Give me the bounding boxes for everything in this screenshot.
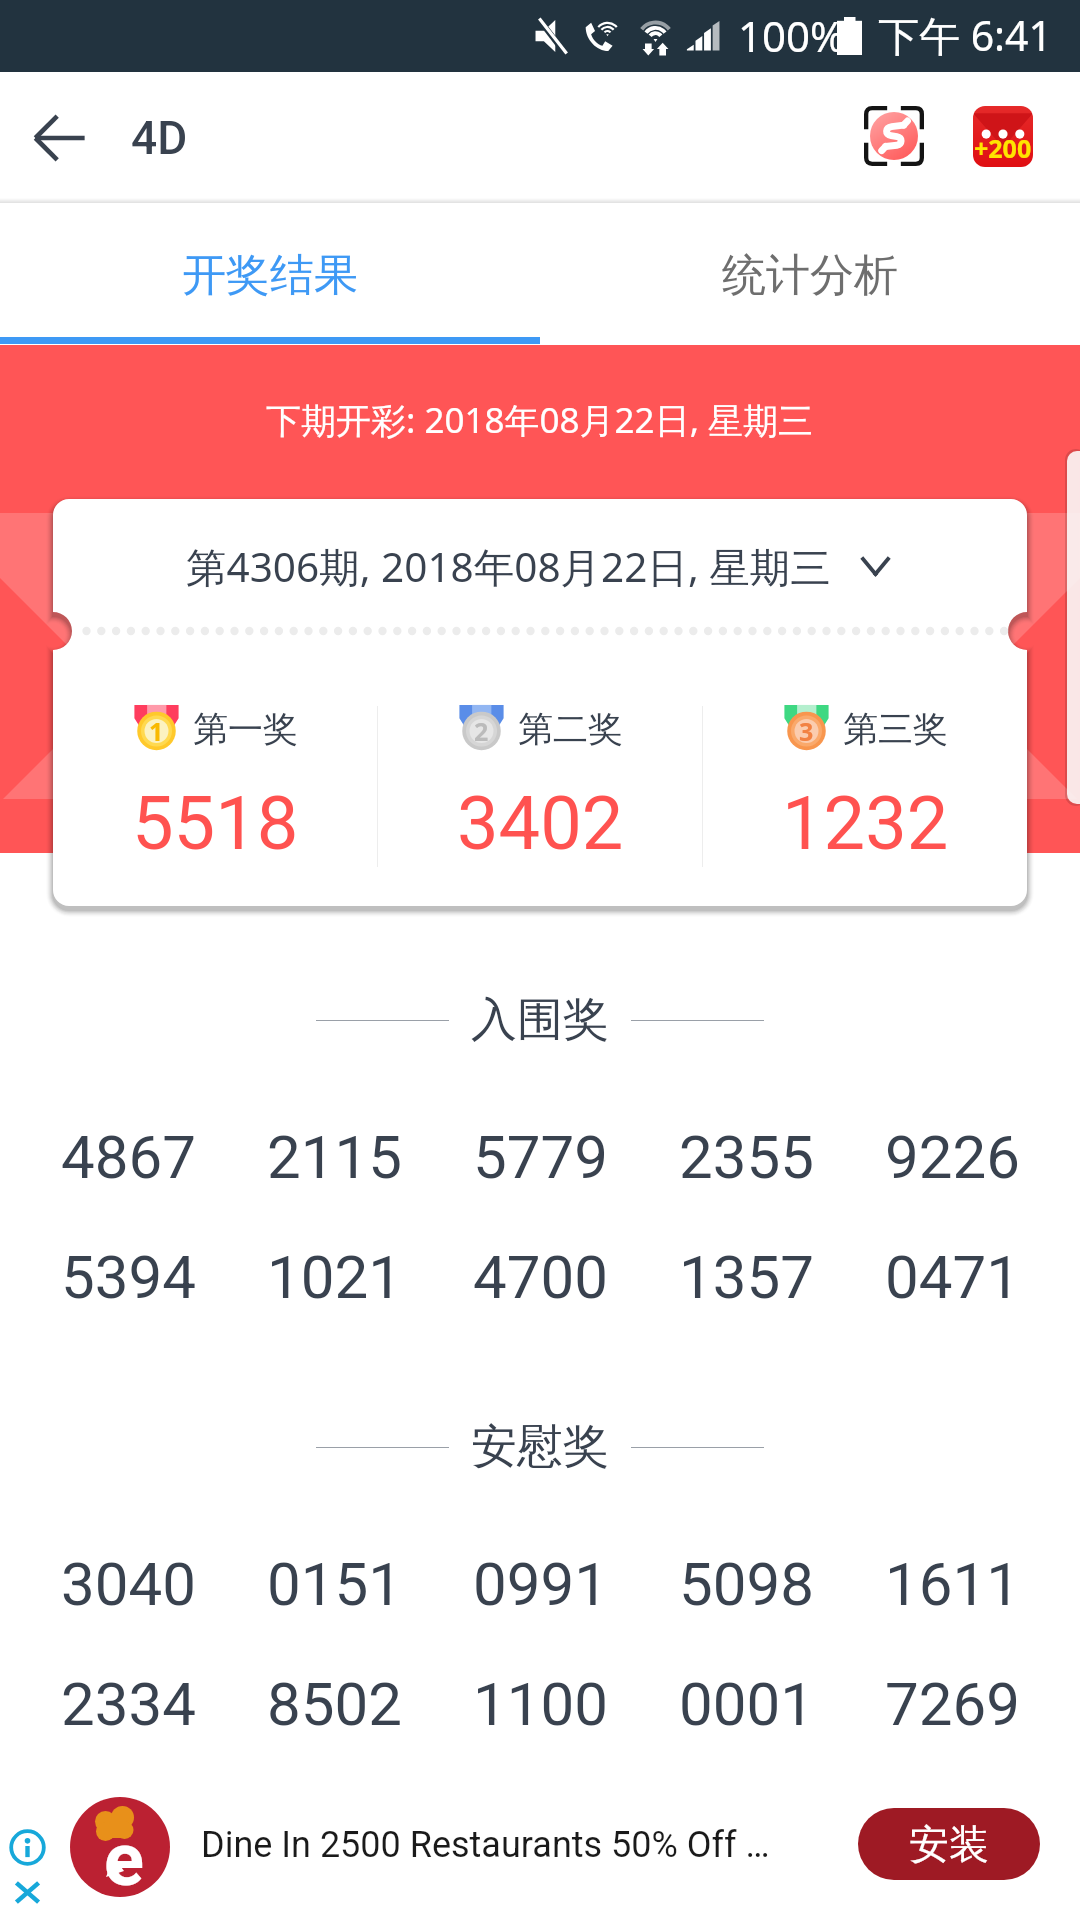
staticText: 3: [799, 714, 814, 748]
staticText: 统计分析: [722, 248, 898, 303]
staticText: 7269: [885, 1669, 1020, 1739]
staticText: 4867: [61, 1122, 196, 1192]
staticText: 1: [149, 714, 164, 748]
staticText: 安慰奖: [471, 1418, 609, 1476]
button[interactable]: Close ad: [9, 1874, 46, 1911]
staticText: 安装: [909, 1819, 989, 1869]
staticText: 1100: [473, 1669, 608, 1739]
staticText: 1021: [267, 1242, 402, 1312]
staticText: 0991: [473, 1549, 608, 1619]
button[interactable]: 安装: [858, 1808, 1040, 1880]
staticText: 5779: [473, 1122, 608, 1192]
button[interactable]: Back: [14, 92, 106, 184]
button[interactable]: Messages, 200 points: [957, 90, 1049, 182]
staticText: 下期开彩: 2018年08月22日, 星期三: [266, 396, 814, 444]
button[interactable]: 统计分析: [540, 203, 1080, 344]
staticText: 2: [474, 714, 489, 748]
staticText: 入围奖: [471, 991, 609, 1049]
staticText: 100%: [738, 7, 845, 64]
staticText: 0001: [679, 1669, 814, 1739]
staticText: 0471: [885, 1242, 1020, 1312]
button[interactable]: 开奖结果: [0, 203, 540, 344]
staticText: 5394: [61, 1242, 196, 1312]
staticText: 第4306期, 2018年08月22日, 星期三: [186, 539, 831, 594]
staticText: 3402: [457, 780, 624, 867]
staticText: Dine In 2500 Restaurants 50% Off …: [201, 1824, 770, 1866]
staticText: 第二奖: [518, 707, 623, 751]
staticText: 4700: [473, 1242, 608, 1312]
staticText: 3040: [61, 1549, 196, 1619]
staticText: 1357: [679, 1242, 814, 1312]
staticText: 第一奖: [193, 707, 298, 751]
staticText: 5518: [132, 780, 299, 867]
staticText: 2355: [679, 1122, 814, 1192]
staticText: 9226: [885, 1122, 1020, 1192]
staticText: 下午 6:41: [878, 7, 1053, 63]
staticText: +200: [974, 131, 1032, 165]
staticText: 5098: [679, 1549, 814, 1619]
staticText: 2334: [61, 1669, 196, 1739]
staticText: 8502: [267, 1669, 402, 1739]
staticText: 第三奖: [843, 707, 948, 751]
staticText: 1611: [885, 1549, 1020, 1619]
staticText: 4D: [131, 111, 188, 165]
staticText: 0151: [267, 1549, 402, 1619]
button[interactable]: Scan code: [848, 90, 940, 182]
button[interactable]: Ad information: [9, 1829, 46, 1866]
staticText: 2115: [267, 1122, 402, 1192]
staticText: 1232: [782, 780, 949, 867]
staticText: e: [104, 1816, 144, 1897]
staticText: 开奖结果: [182, 248, 358, 303]
